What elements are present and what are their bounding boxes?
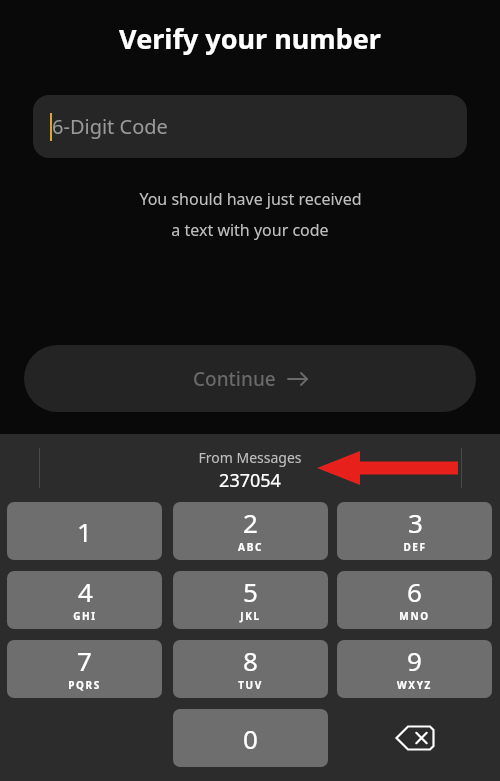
staticText: 2 xyxy=(243,505,258,540)
staticText: 0 xyxy=(243,721,258,756)
staticText: From Messages xyxy=(198,448,302,467)
staticText: WXYZ xyxy=(397,678,432,692)
button[interactable]: Continue xyxy=(24,345,476,412)
staticText: PQRS xyxy=(68,678,101,692)
staticText: GHI xyxy=(73,609,97,623)
staticText: Verify your number xyxy=(0,20,500,57)
staticText: 4 xyxy=(78,574,93,609)
button[interactable]: 0 xyxy=(173,709,328,767)
button[interactable]: 7 xyxy=(7,640,162,698)
staticText: Continue xyxy=(193,366,276,392)
staticText: 5 xyxy=(243,574,258,609)
staticText: You should have just received xyxy=(139,188,362,210)
button[interactable]: 1 xyxy=(7,502,162,560)
staticText: 237054 xyxy=(219,468,281,493)
button[interactable]: 8 xyxy=(173,640,328,698)
button[interactable]: 6 xyxy=(337,571,492,629)
button[interactable]: 5 xyxy=(173,571,328,629)
button[interactable]: Backspace xyxy=(337,709,492,767)
staticText: 8 xyxy=(243,643,258,678)
staticText: DEF xyxy=(403,540,427,554)
staticText: MNO xyxy=(399,609,430,623)
staticText: 3 xyxy=(408,505,423,540)
button[interactable]: 3 xyxy=(337,502,492,560)
staticText: 6-Digit Code xyxy=(52,113,168,140)
staticText: TUV xyxy=(238,678,263,692)
staticText: 9 xyxy=(407,643,422,678)
button[interactable]: 4 xyxy=(7,571,162,629)
staticText: a text with your code xyxy=(171,219,329,241)
staticText: 6 xyxy=(407,574,422,609)
button[interactable]: From Messages xyxy=(0,448,500,493)
button[interactable]: 6-Digit Code xyxy=(33,95,467,158)
staticText: 1 xyxy=(77,514,92,549)
staticText: ABC xyxy=(238,540,263,554)
button[interactable]: 9 xyxy=(337,640,492,698)
staticText: JKL xyxy=(240,609,261,623)
button[interactable]: 2 xyxy=(173,502,328,560)
staticText: 7 xyxy=(77,643,92,678)
